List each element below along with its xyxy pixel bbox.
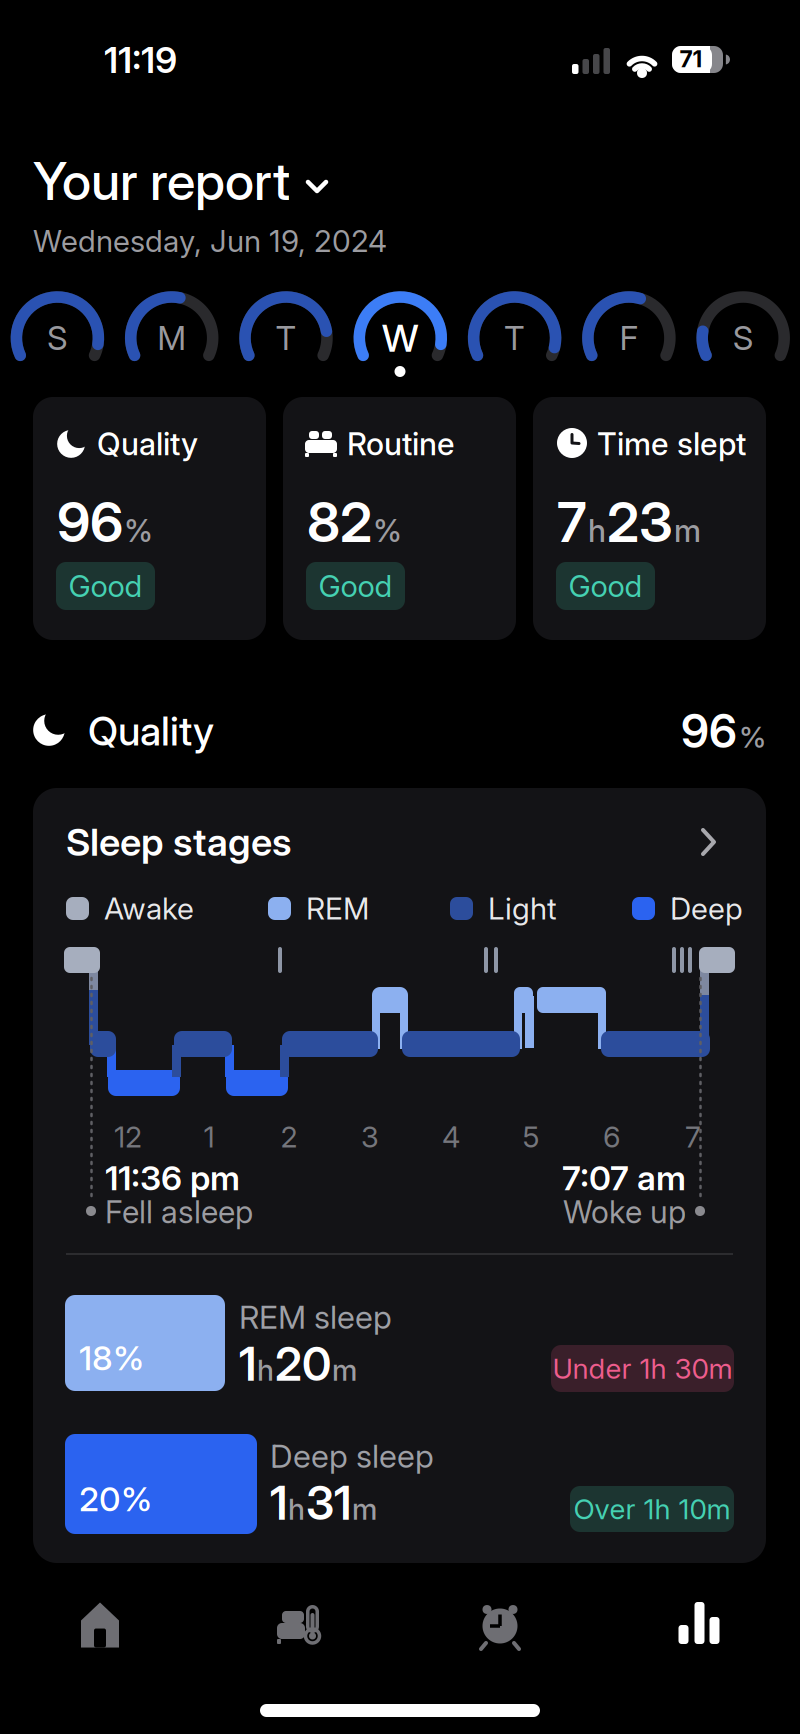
staticText: F [619,318,638,358]
button[interactable]: S [688,283,798,393]
staticText: 1 [203,1119,214,1155]
staticText: Quality [88,707,214,755]
staticText: 7:07 am [562,1157,686,1198]
staticText: h [288,1492,305,1527]
staticText: h [257,1353,274,1388]
staticText: REM [306,890,369,927]
staticText: 23 [607,489,673,555]
staticText: Good [68,568,142,604]
staticText: 96 [57,489,123,555]
staticText: 82 [307,489,372,555]
staticText: 96 [681,703,737,759]
staticText: 3 [361,1119,379,1155]
staticText: REM sleep [239,1298,392,1336]
staticText: 4 [442,1119,460,1155]
button[interactable] [478,1603,522,1649]
staticText: 2 [280,1119,297,1155]
staticText: m [674,512,701,549]
staticText: 31 [306,1475,351,1531]
staticText: Deep sleep [270,1437,434,1475]
button[interactable]: T [460,283,570,393]
staticText: % [373,512,402,549]
staticText: 20 [275,1336,331,1392]
staticText: m [352,1492,377,1527]
staticText: Woke up [563,1193,686,1231]
staticText: 7 [685,1119,701,1155]
button[interactable]: Sleep stages [33,818,766,866]
staticText: 11:36 pm [105,1157,240,1198]
staticText: Sleep stages [66,819,292,865]
staticText: m [332,1353,357,1388]
staticText: Awake [104,890,194,927]
staticText: Over 1h 10m [573,1492,730,1526]
staticText: Fell asleep [105,1193,253,1231]
button[interactable]: Your report [33,149,328,212]
button[interactable] [533,397,766,640]
staticText: 20% [79,1478,152,1519]
staticText: Under 1h 30m [552,1352,732,1385]
button[interactable] [33,397,266,640]
staticText: 71 [679,45,702,73]
staticText: S [47,318,68,358]
staticText: 12 [114,1119,142,1155]
staticText: Light [488,890,557,927]
staticText: Time slept [597,425,746,463]
staticText: Your report [33,149,290,212]
button[interactable]: S [2,283,112,393]
staticText: S [733,318,754,358]
staticText: 1 [239,1336,256,1392]
staticText: T [504,318,525,358]
button[interactable] [283,397,516,640]
button[interactable] [80,1602,120,1647]
staticText: T [275,318,296,358]
button[interactable]: M [117,283,227,393]
button[interactable] [277,1605,323,1645]
staticText: 18% [79,1337,144,1378]
staticText: Deep [670,890,743,927]
staticText: Routine [347,425,455,463]
staticText: Wednesday, Jun 19, 2024 [33,223,387,259]
staticText: 7 [557,489,587,555]
staticText: % [124,512,153,549]
staticText: M [157,318,186,358]
staticText: Good [318,568,392,604]
staticText: 6 [603,1119,621,1155]
staticText: 5 [522,1119,539,1155]
staticText: Good [568,568,642,604]
staticText: % [739,720,766,755]
staticText: W [382,315,419,361]
staticText: 11:19 [104,38,177,82]
button[interactable]: F [574,283,684,393]
button[interactable] [678,1602,719,1644]
staticText: 1 [270,1475,287,1531]
button[interactable]: W [345,283,455,393]
button[interactable]: T [231,283,341,393]
staticText: h [588,512,606,549]
staticText: Quality [97,425,198,463]
